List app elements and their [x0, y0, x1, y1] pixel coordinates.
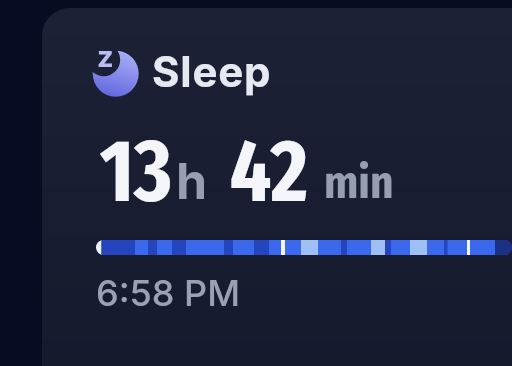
button[interactable]: z — [42, 8, 512, 366]
staticText: h — [176, 151, 208, 211]
staticText: 42 — [230, 120, 308, 224]
staticText: 6:58 PM — [96, 271, 241, 315]
staticText: Sleep — [152, 46, 272, 97]
staticText: 13 — [100, 120, 172, 224]
staticText: z — [97, 39, 114, 74]
staticText: min — [324, 156, 394, 210]
